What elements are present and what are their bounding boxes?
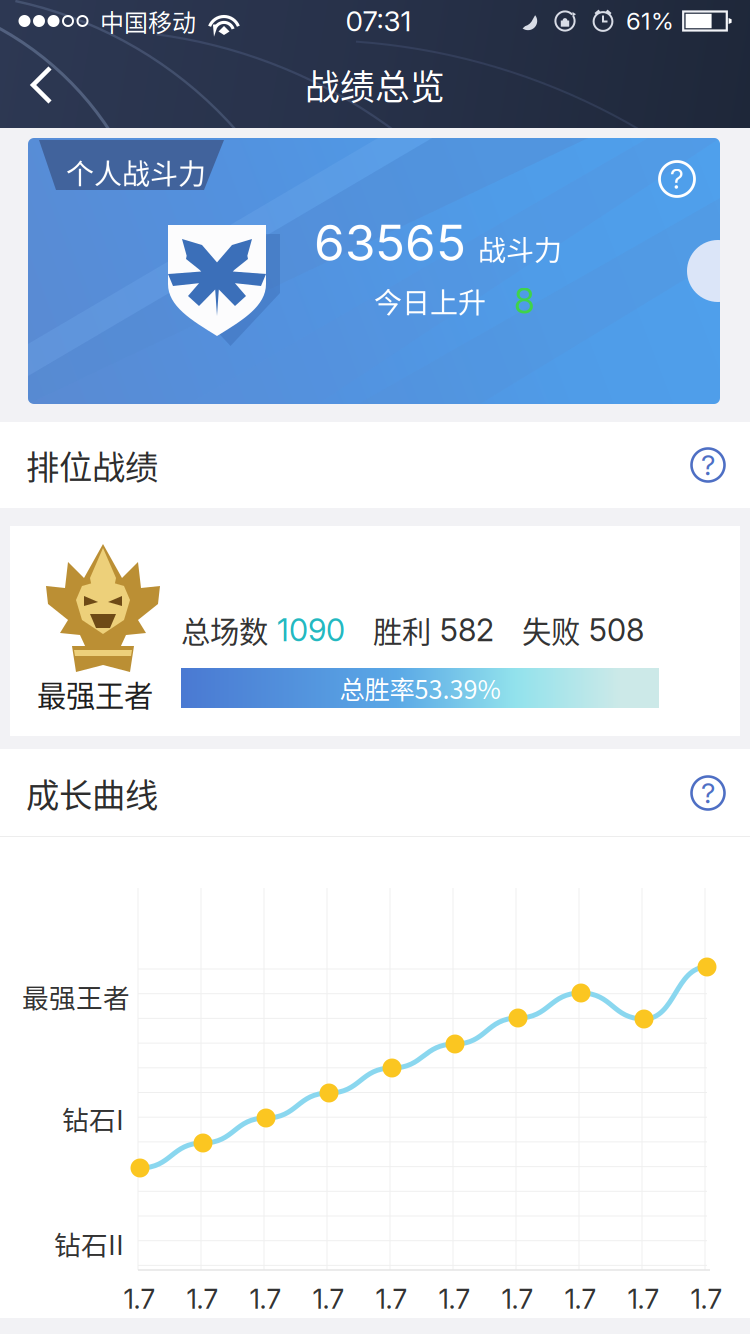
staticText: 1.7 <box>438 1283 470 1315</box>
button[interactable]: Battle power help <box>654 156 700 202</box>
staticText: 排位战绩 <box>26 441 158 489</box>
staticText: 1.7 <box>627 1283 659 1315</box>
staticText: 1.7 <box>564 1283 596 1315</box>
staticText: 成长曲线 <box>26 769 158 817</box>
staticText: 今日上升 <box>374 281 486 321</box>
staticText: 1.7 <box>312 1283 344 1315</box>
staticText: 钻石II <box>54 1224 124 1263</box>
staticText: 失败 <box>522 609 580 651</box>
staticText: 1.7 <box>690 1283 722 1315</box>
staticText: 1.7 <box>249 1283 281 1315</box>
staticText: 战绩总览 <box>305 60 445 110</box>
staticText: 508 <box>589 611 644 648</box>
staticText: ? <box>701 776 715 810</box>
staticText: ? <box>670 163 684 195</box>
staticText: 总胜率53.39% <box>339 670 500 706</box>
staticText: 总场数 <box>181 609 268 651</box>
button[interactable]: Back <box>0 64 82 106</box>
staticText: 8 <box>514 280 535 322</box>
staticText: 最强王者 <box>22 977 130 1016</box>
staticText: 战斗力 <box>478 228 562 269</box>
staticText: 钻石I <box>62 1099 124 1138</box>
staticText: ? <box>701 448 715 482</box>
staticText: 1.7 <box>375 1283 407 1315</box>
button[interactable]: Help <box>688 773 728 813</box>
staticText: 582 <box>440 611 494 648</box>
staticText: 1.7 <box>186 1283 218 1315</box>
staticText: 中国移动 <box>100 4 196 38</box>
staticText: 1090 <box>277 611 345 648</box>
staticText: 1.7 <box>123 1283 155 1315</box>
staticText: 最强王者 <box>37 673 153 715</box>
staticText: 63565 <box>314 213 466 273</box>
button[interactable]: Help <box>688 445 728 485</box>
staticText: 个人战斗力 <box>66 152 206 192</box>
staticText: 胜利 <box>373 609 431 651</box>
staticText: 61% <box>626 6 674 35</box>
staticText: 1.7 <box>501 1283 533 1315</box>
staticText: 07:31 <box>345 4 411 38</box>
